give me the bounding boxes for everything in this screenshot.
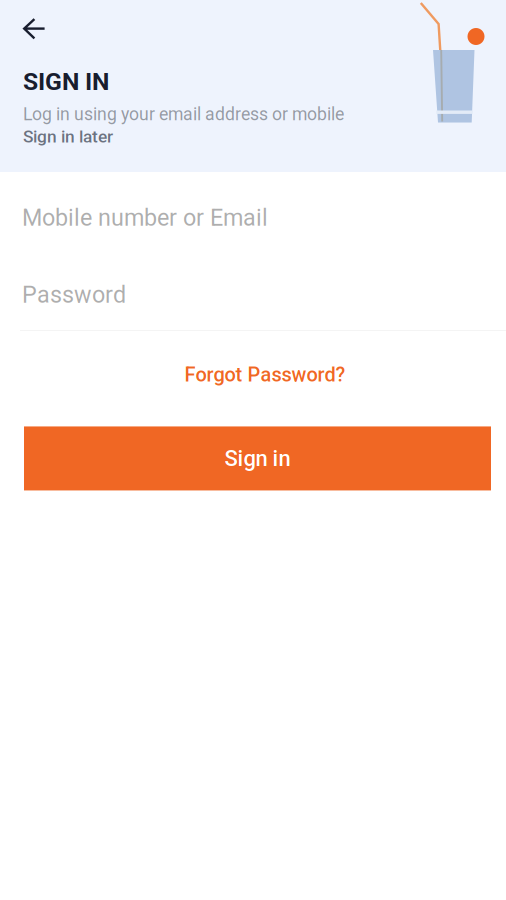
staticText: SIGN IN <box>23 67 109 96</box>
staticText: Mobile number or Email <box>22 204 268 231</box>
staticText: Forgot Password? <box>184 363 345 386</box>
button[interactable]: Sign in <box>24 426 491 490</box>
button[interactable]: Sign in later <box>0 124 127 153</box>
button[interactable]: Mobile number or Email <box>0 204 506 281</box>
staticText: Sign in later <box>23 126 113 147</box>
staticText: Sign in <box>224 445 290 471</box>
button[interactable]: Forgot Password? <box>0 353 506 396</box>
button[interactable]: Password <box>0 281 506 331</box>
button[interactable]: Back <box>0 0 60 53</box>
staticText: Log in using your email address or mobil… <box>23 104 344 124</box>
staticText: Password <box>22 281 126 308</box>
